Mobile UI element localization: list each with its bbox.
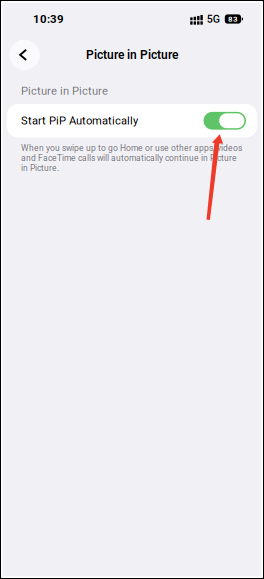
staticText: When you swipe up to go Home or use othe…	[21, 143, 242, 173]
button[interactable]: Back	[9, 40, 40, 70]
button[interactable]: Start PiP Automatically	[7, 104, 257, 137]
staticText: 5G	[207, 13, 220, 25]
staticText: Picture in Picture	[86, 48, 178, 62]
staticText: Picture in Picture	[21, 84, 108, 97]
staticText: 83	[228, 14, 238, 24]
staticText: Start PiP Automatically	[21, 114, 138, 127]
staticText: 10:39	[33, 12, 64, 26]
